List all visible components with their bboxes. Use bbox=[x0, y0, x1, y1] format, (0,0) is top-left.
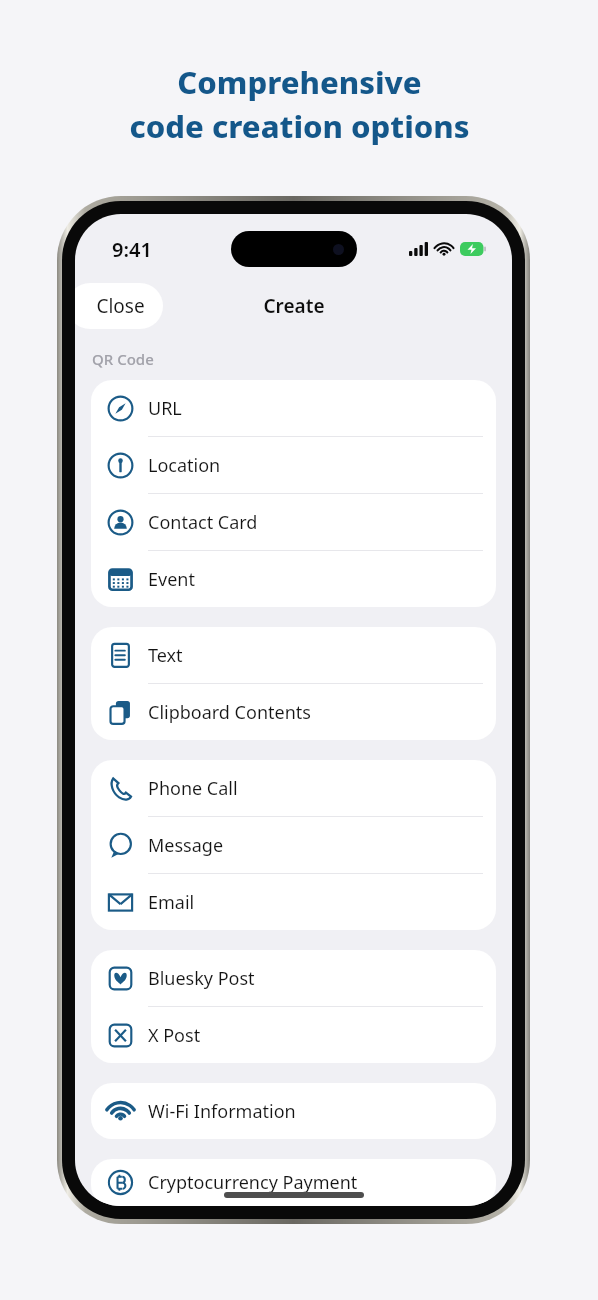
button[interactable]: Cryptocurrency Payment bbox=[91, 1159, 496, 1206]
button[interactable]: URL bbox=[91, 380, 496, 436]
button[interactable]: X Post bbox=[91, 1007, 496, 1063]
button[interactable]: Clipboard Contents bbox=[91, 684, 496, 740]
staticText: Event bbox=[148, 567, 496, 592]
button[interactable]: Message bbox=[91, 817, 496, 873]
staticText: 9:41 bbox=[112, 236, 152, 263]
button[interactable]: Contact Card bbox=[91, 494, 496, 550]
staticText: URL bbox=[148, 396, 496, 421]
staticText: X Post bbox=[148, 1023, 496, 1048]
staticText: Location bbox=[148, 453, 496, 478]
staticText: Wi-Fi Information bbox=[148, 1099, 496, 1124]
staticText: code creation options bbox=[129, 105, 470, 147]
staticText: Email bbox=[148, 890, 496, 915]
button[interactable]: Event bbox=[91, 551, 496, 607]
button[interactable]: Text bbox=[91, 627, 496, 683]
staticText: Contact Card bbox=[148, 510, 496, 535]
button[interactable]: Close bbox=[75, 283, 163, 329]
staticText: Create bbox=[263, 293, 325, 319]
staticText: Bluesky Post bbox=[148, 966, 496, 991]
button[interactable]: Email bbox=[91, 874, 496, 930]
staticText: Text bbox=[148, 643, 496, 668]
button[interactable]: Phone Call bbox=[91, 760, 496, 816]
staticText: Close bbox=[96, 293, 145, 319]
button[interactable]: Bluesky Post bbox=[91, 950, 496, 1006]
button[interactable]: Location bbox=[91, 437, 496, 493]
staticText: Comprehensive bbox=[177, 61, 422, 103]
staticText: Message bbox=[148, 833, 496, 858]
staticText: Clipboard Contents bbox=[148, 700, 496, 725]
staticText: QR Code bbox=[92, 349, 154, 369]
button[interactable]: Wi-Fi Information bbox=[91, 1083, 496, 1139]
staticText: Phone Call bbox=[148, 776, 496, 801]
staticText: Cryptocurrency Payment bbox=[148, 1170, 496, 1195]
